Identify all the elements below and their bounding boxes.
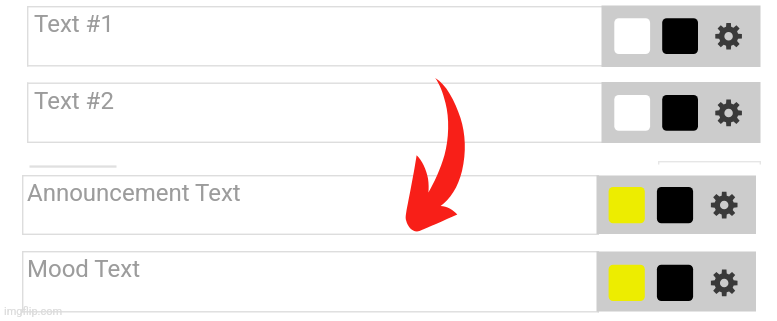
button[interactable]: Choose background colour — [609, 265, 645, 301]
button[interactable]: Text #2 — [27, 83, 602, 144]
button[interactable]: Announcement Text — [22, 175, 597, 235]
button[interactable]: Choose text colour — [657, 187, 693, 223]
button[interactable]: Choose background colour — [614, 18, 650, 54]
staticText: Text #2 — [34, 87, 114, 115]
staticText: imgflip.com — [4, 305, 63, 318]
button[interactable]: Settings — [709, 268, 739, 298]
button[interactable]: Choose text colour — [662, 95, 698, 131]
button[interactable]: Choose background colour — [614, 95, 650, 131]
button[interactable]: Text #1 — [27, 6, 602, 67]
button[interactable]: Settings — [709, 190, 739, 220]
button[interactable]: Mood Text — [22, 251, 597, 313]
button[interactable]: Settings — [714, 21, 744, 51]
button[interactable]: Choose text colour — [662, 18, 698, 54]
button[interactable]: Choose background colour — [609, 187, 645, 223]
staticText: Announcement Text — [27, 179, 241, 207]
staticText: Text #1 — [34, 10, 114, 38]
staticText: Mood Text — [27, 255, 140, 283]
button[interactable]: Settings — [714, 98, 744, 128]
button[interactable]: Choose text colour — [657, 265, 693, 301]
